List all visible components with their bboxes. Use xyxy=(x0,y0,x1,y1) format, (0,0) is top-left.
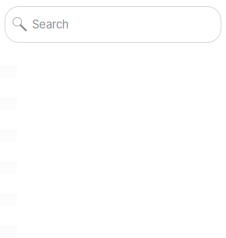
staticText: Search xyxy=(32,18,69,31)
button[interactable]: Search xyxy=(5,6,221,42)
